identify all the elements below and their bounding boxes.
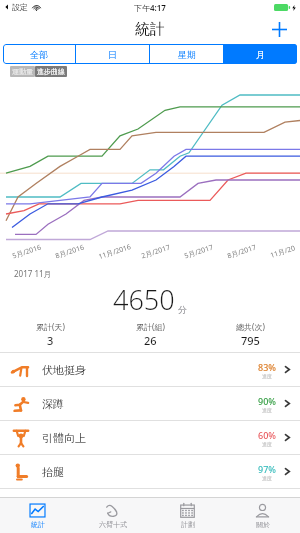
- staticText: 70%: [258, 497, 276, 509]
- staticText: 進度: [262, 509, 272, 515]
- staticText: 2月/2017: [140, 243, 172, 261]
- button[interactable]: 全部: [3, 44, 75, 64]
- staticText: 月: [256, 49, 265, 60]
- staticText: 運動量: [12, 67, 33, 76]
- button[interactable]: 星期: [150, 44, 223, 64]
- button[interactable]: 深蹲: [0, 387, 300, 420]
- button[interactable]: 引體向上: [0, 421, 300, 454]
- staticText: 進度: [262, 407, 272, 413]
- staticText: 進度: [262, 475, 272, 481]
- staticText: 關於: [256, 520, 270, 529]
- staticText: 2017 11月: [14, 268, 52, 279]
- staticText: 11月/2016: [97, 242, 133, 262]
- button[interactable]: 日: [76, 44, 149, 64]
- staticText: 計劃: [181, 520, 195, 529]
- staticText: 抬腿: [42, 465, 64, 479]
- staticText: 累計(組): [136, 321, 165, 332]
- button[interactable]: 統計: [0, 498, 75, 533]
- staticText: 795: [241, 333, 260, 348]
- staticText: 83%: [258, 361, 276, 373]
- staticText: 60%: [258, 429, 276, 441]
- staticText: 5月/2016: [11, 243, 43, 261]
- staticText: 分: [178, 304, 187, 315]
- button[interactable]: 計劃: [150, 498, 225, 533]
- button[interactable]: Add: [266, 16, 292, 42]
- staticText: 下午4:17: [134, 2, 166, 13]
- staticText: 設定: [12, 2, 28, 12]
- staticText: 11月/20: [269, 243, 297, 261]
- staticText: 進度: [262, 441, 272, 447]
- staticText: 統計: [135, 20, 165, 39]
- staticText: 90%: [258, 395, 276, 407]
- staticText: 下腰: [42, 499, 64, 513]
- staticText: 全部: [30, 49, 48, 60]
- button[interactable]: 月: [224, 44, 297, 64]
- staticText: 伏地挺身: [42, 363, 86, 377]
- staticText: 深蹲: [42, 397, 64, 411]
- staticText: 統計: [31, 520, 45, 529]
- staticText: 累計(天): [36, 321, 65, 332]
- staticText: 3: [47, 333, 54, 348]
- button[interactable]: 下腰: [0, 489, 300, 522]
- staticText: 星期: [178, 49, 196, 60]
- button[interactable]: 進步曲線: [37, 67, 65, 76]
- staticText: 8月/2017: [226, 243, 258, 261]
- button[interactable]: 抬腿: [0, 455, 300, 488]
- staticText: 進步曲線: [37, 67, 65, 76]
- staticText: 總共(次): [236, 321, 265, 332]
- staticText: 8月/2016: [54, 243, 86, 261]
- button[interactable]: 伏地挺身: [0, 353, 300, 386]
- button[interactable]: 運動量: [12, 67, 33, 76]
- staticText: 26: [144, 333, 157, 348]
- button[interactable]: 六臂十式: [75, 498, 150, 533]
- staticText: 97%: [258, 463, 276, 475]
- staticText: 日: [108, 49, 117, 60]
- staticText: 六臂十式: [99, 520, 127, 529]
- button[interactable]: 關於: [225, 498, 300, 533]
- staticText: 4650: [113, 281, 175, 318]
- staticText: 5月/2017: [183, 243, 215, 261]
- staticText: 引體向上: [42, 431, 86, 445]
- staticText: 進度: [262, 373, 272, 379]
